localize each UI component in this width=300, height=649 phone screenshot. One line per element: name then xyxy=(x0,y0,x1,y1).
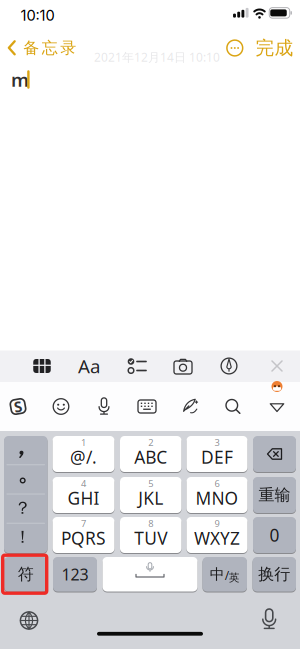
staticText: 换行 xyxy=(258,564,290,584)
button[interactable]: 8 TUV xyxy=(120,516,181,553)
button[interactable]: Handwriting xyxy=(171,386,209,426)
button[interactable]: More xyxy=(221,34,249,62)
staticText: JKL xyxy=(138,486,163,509)
button[interactable]: Dictate xyxy=(249,599,289,639)
staticText: 7 xyxy=(81,517,86,530)
button[interactable]: 5 JKL xyxy=(120,476,181,513)
staticText: S xyxy=(14,397,22,416)
staticText: 5 xyxy=(148,477,153,490)
staticText: / xyxy=(225,567,229,583)
button[interactable]: Dismiss toolbar xyxy=(257,350,297,381)
staticText: ？ xyxy=(14,497,31,519)
staticText: DEF xyxy=(201,445,233,468)
staticText: Aa xyxy=(78,354,100,378)
staticText: 0 xyxy=(269,523,279,546)
button[interactable]: 1 @/. xyxy=(52,435,114,472)
button[interactable]: 6 MNO xyxy=(186,476,247,513)
staticText: 英 xyxy=(229,571,240,584)
staticText: 9 xyxy=(214,517,219,530)
button[interactable]: Search xyxy=(214,386,252,426)
staticText: 完成 xyxy=(255,36,293,59)
button[interactable]: 换行 xyxy=(252,556,296,592)
staticText: ！ xyxy=(14,526,31,548)
button[interactable]: Emoji xyxy=(42,386,80,426)
button[interactable]: Insert table xyxy=(20,350,64,381)
button[interactable]: 3 DEF xyxy=(186,435,247,472)
staticText: MNO xyxy=(195,486,238,509)
button[interactable]: 7 PQRS xyxy=(52,516,114,553)
button[interactable]: Punctuation xyxy=(4,435,47,553)
button[interactable]: Delete xyxy=(253,435,296,472)
staticText: 10:10 xyxy=(20,7,54,24)
staticText: ABC xyxy=(134,445,167,468)
staticText: 2 xyxy=(148,436,153,449)
button[interactable]: 2 ABC xyxy=(120,435,181,472)
staticText: 3 xyxy=(214,436,219,449)
staticText: 重输 xyxy=(258,485,290,505)
button[interactable]: 备忘录 xyxy=(8,38,76,58)
button[interactable]: Next keyboard xyxy=(9,600,49,640)
button[interactable]: 4 GHI xyxy=(52,476,114,513)
button[interactable]: Checklist xyxy=(114,350,158,381)
staticText: WXYZ xyxy=(194,526,240,549)
staticText: 6 xyxy=(214,477,219,490)
button[interactable]: Format xyxy=(67,350,111,381)
staticText: m xyxy=(11,67,29,92)
staticText: 忘 xyxy=(42,38,58,58)
staticText: @/. xyxy=(70,445,97,468)
button[interactable]: 0 xyxy=(253,516,296,553)
staticText: 备 xyxy=(23,38,39,58)
button[interactable]: Markup xyxy=(207,350,251,381)
staticText: PQRS xyxy=(61,526,106,549)
button[interactable]: Keyboard layouts xyxy=(128,386,166,426)
staticText: 中 xyxy=(210,565,225,583)
staticText: TUV xyxy=(134,526,167,549)
button[interactable]: 123 xyxy=(53,556,97,592)
button[interactable]: Hide keyboard xyxy=(258,392,296,422)
button[interactable]: 重输 xyxy=(253,476,296,513)
button[interactable]: 符 xyxy=(4,556,47,592)
button[interactable]: 空格 xyxy=(102,556,197,592)
button[interactable]: Insert photo xyxy=(161,350,205,381)
staticText: 符 xyxy=(18,564,34,584)
button[interactable]: 9 WXYZ xyxy=(186,516,247,553)
staticText: 123 xyxy=(61,564,88,585)
button[interactable]: Sogou xyxy=(0,386,37,426)
button[interactable]: 中/英 xyxy=(202,556,247,592)
staticText: 8 xyxy=(148,517,153,530)
staticText: 4 xyxy=(81,477,86,490)
staticText: 1 xyxy=(81,436,86,449)
button[interactable]: 完成 xyxy=(250,36,298,60)
button[interactable]: Voice input xyxy=(85,386,123,426)
staticText: 录 xyxy=(60,38,76,58)
staticText: GHI xyxy=(67,486,99,509)
staticText: 2021年12月14日 10:10 xyxy=(94,49,220,65)
